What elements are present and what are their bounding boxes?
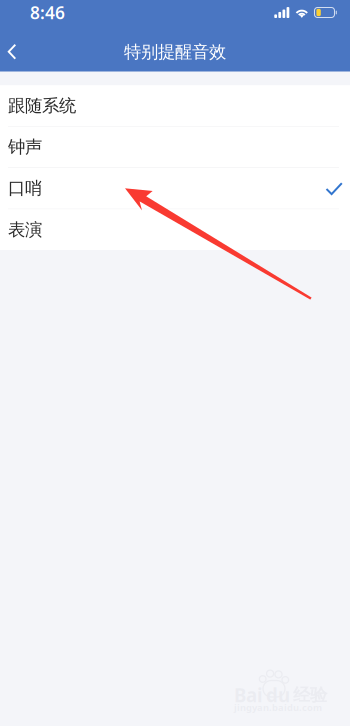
button[interactable]: 口哨 — [0, 168, 350, 209]
staticText: 跟随系统 — [8, 95, 76, 116]
button[interactable]: 钟声 — [0, 127, 350, 167]
button[interactable]: 表演 — [0, 209, 350, 250]
staticText: jingyan.baidu.com — [234, 701, 322, 714]
staticText: du — [266, 682, 290, 707]
staticText: Bai — [234, 682, 263, 707]
staticText: 钟声 — [8, 136, 42, 158]
staticText: 特别提醒音效 — [124, 41, 226, 63]
staticText: 表演 — [8, 219, 42, 240]
staticText: 口哨 — [8, 178, 42, 199]
staticText: 8:46 — [30, 1, 65, 24]
staticText: 经验 — [293, 684, 327, 705]
button[interactable]: Back — [0, 33, 29, 71]
button[interactable]: 跟随系统 — [0, 85, 350, 126]
